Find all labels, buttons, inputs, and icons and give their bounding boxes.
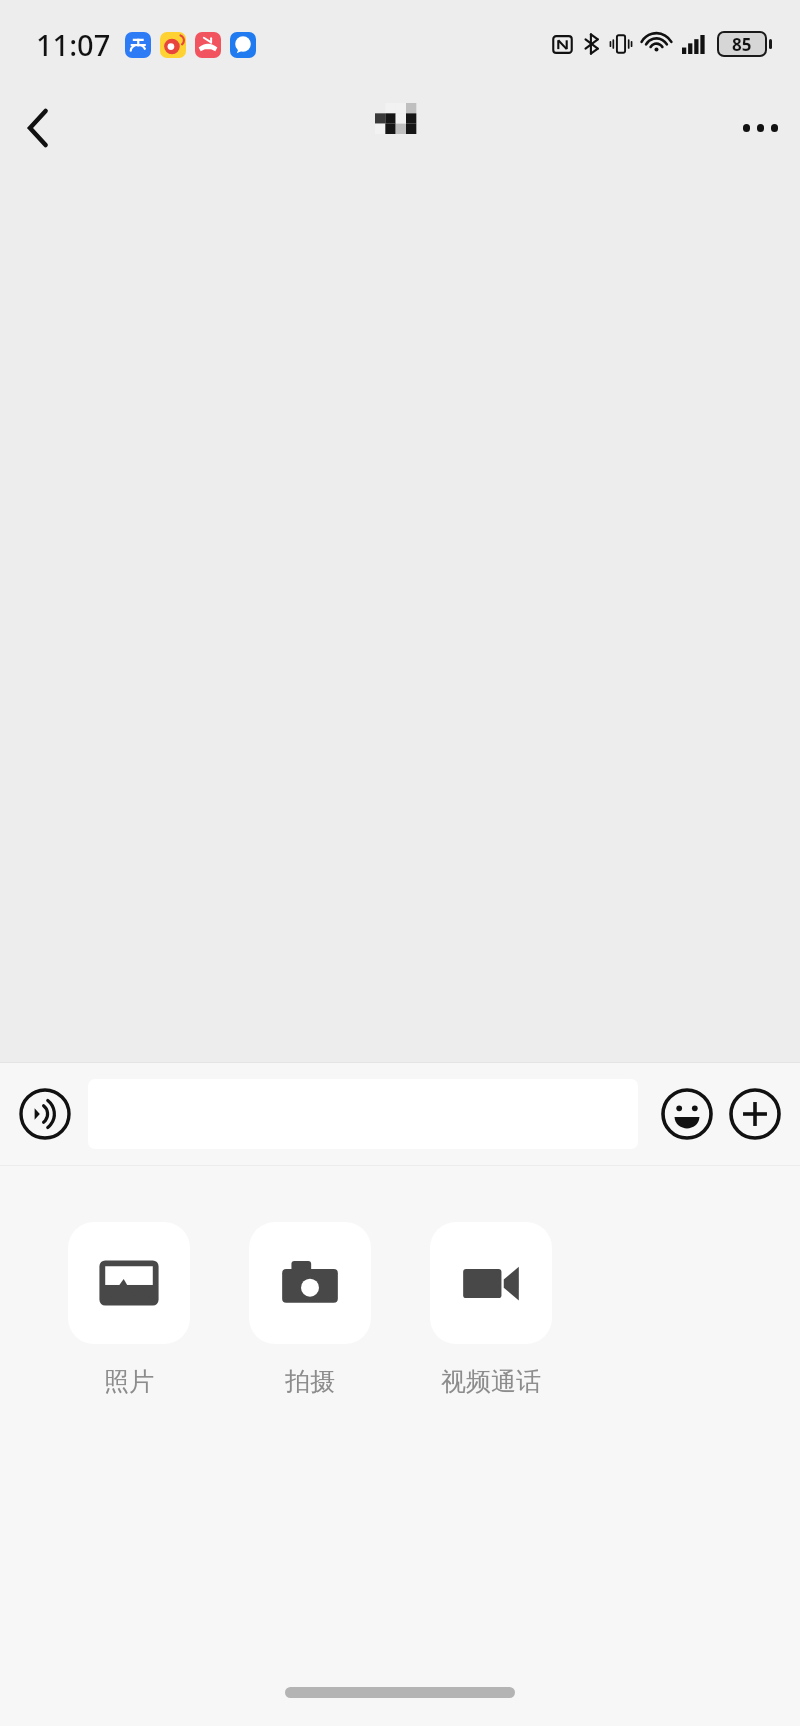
button[interactable]: More functions [724,1083,786,1145]
staticText: 照片 [104,1366,154,1397]
button[interactable]: 照片 [38,1222,219,1397]
button[interactable]: Emoji [656,1083,718,1145]
staticText: 视频通话 [441,1366,541,1397]
button[interactable]: More options [720,88,800,168]
staticText: 11:07 [36,25,111,64]
staticText: 拍摄 [285,1366,335,1397]
button[interactable]: 视频通话 [400,1222,581,1397]
button[interactable]: Voice message [14,1083,76,1145]
button[interactable]: 拍摄 [219,1222,400,1397]
button[interactable]: Back [0,90,76,166]
staticText: 85 [732,33,752,55]
